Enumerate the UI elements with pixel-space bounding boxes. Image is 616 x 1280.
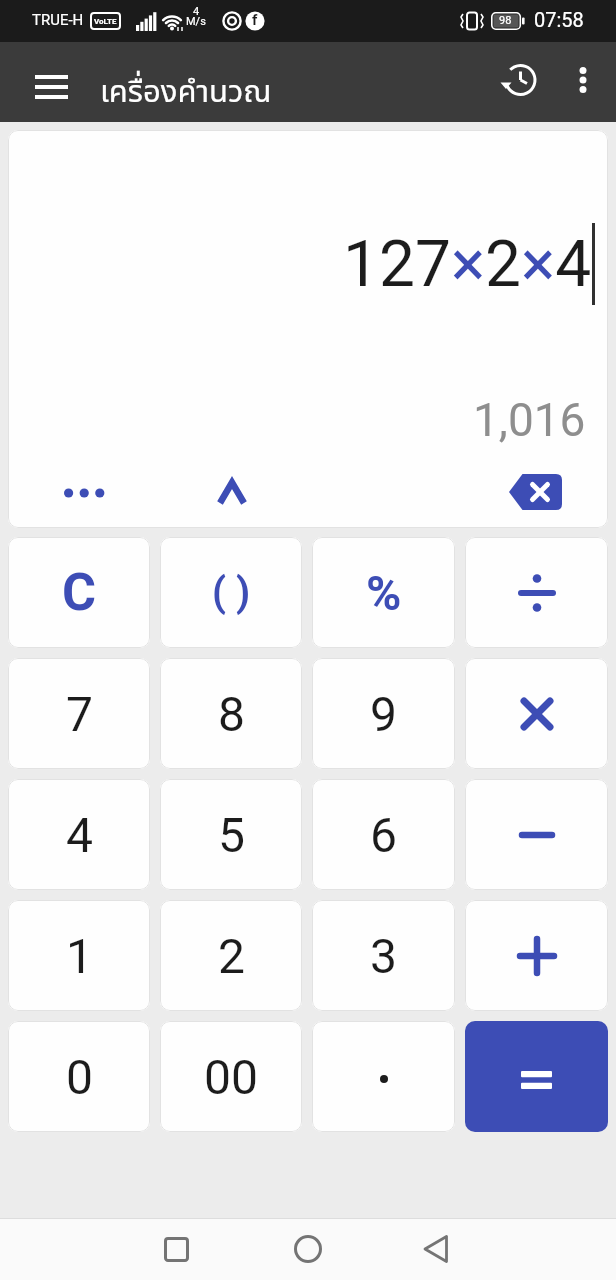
- button[interactable]: [465, 1021, 608, 1132]
- staticText: TRUE-H: [32, 11, 84, 29]
- button[interactable]: [278, 1219, 338, 1279]
- button[interactable]: [465, 537, 608, 648]
- staticText: ( ): [212, 569, 251, 616]
- button[interactable]: 7: [8, 658, 150, 769]
- staticText: เครื่องคำนวณ: [100, 69, 272, 116]
- button[interactable]: [465, 779, 608, 890]
- button[interactable]: [465, 900, 608, 1011]
- button[interactable]: [48, 473, 120, 513]
- button[interactable]: [560, 56, 606, 104]
- button[interactable]: 5: [160, 779, 302, 890]
- button[interactable]: 00: [160, 1021, 302, 1132]
- button[interactable]: %: [312, 537, 455, 648]
- staticText: %: [366, 565, 402, 621]
- button[interactable]: ( ): [160, 537, 302, 648]
- button[interactable]: 0: [8, 1021, 150, 1132]
- staticText: M/s: [186, 15, 206, 28]
- button[interactable]: [465, 658, 608, 769]
- button[interactable]: [203, 470, 261, 516]
- staticText: 4: [193, 5, 200, 18]
- staticText: 7: [66, 686, 93, 742]
- button[interactable]: 4: [8, 779, 150, 890]
- staticText: 127×2×4: [343, 227, 592, 302]
- staticText: 3: [370, 928, 397, 984]
- staticText: f: [252, 11, 258, 29]
- staticText: 07:58: [534, 8, 584, 31]
- button[interactable]: [496, 56, 544, 104]
- button[interactable]: 2: [160, 900, 302, 1011]
- staticText: 2: [218, 928, 245, 984]
- staticText: 9: [370, 686, 397, 742]
- button[interactable]: 6: [312, 779, 455, 890]
- button[interactable]: [406, 1219, 466, 1279]
- staticText: 5: [218, 807, 245, 863]
- staticText: 6: [370, 807, 397, 863]
- button[interactable]: 3: [312, 900, 455, 1011]
- button[interactable]: [146, 1219, 206, 1279]
- button[interactable]: [18, 67, 84, 107]
- button[interactable]: 9: [312, 658, 455, 769]
- staticText: 0: [66, 1049, 93, 1105]
- button[interactable]: 8: [160, 658, 302, 769]
- staticText: 1,016: [473, 393, 586, 447]
- staticText: C: [62, 562, 97, 623]
- button[interactable]: 1: [8, 900, 150, 1011]
- button[interactable]: [486, 462, 586, 522]
- staticText: 4: [66, 807, 93, 863]
- staticText: 8: [218, 686, 245, 742]
- staticText: 1: [66, 928, 93, 984]
- button[interactable]: [312, 1021, 455, 1132]
- staticText: 00: [204, 1049, 258, 1105]
- staticText: 98: [499, 14, 512, 27]
- staticText: VoLTE: [94, 17, 117, 26]
- button[interactable]: C: [8, 537, 150, 648]
